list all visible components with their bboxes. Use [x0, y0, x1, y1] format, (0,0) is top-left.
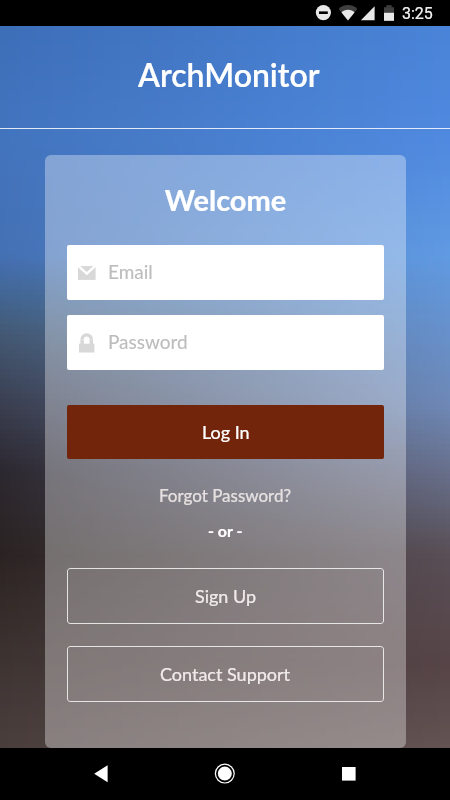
button[interactable]: Contact Support	[67, 646, 384, 702]
button[interactable]: Email	[67, 245, 384, 300]
button[interactable]: Recent apps	[323, 748, 375, 800]
button[interactable]: Home	[199, 748, 251, 800]
staticText: ArchMonitor	[138, 55, 320, 93]
staticText: Welcome	[67, 182, 384, 217]
staticText: Contact Support	[160, 663, 291, 685]
button[interactable]: Sign Up	[67, 568, 384, 624]
button[interactable]: Forgot Password?	[67, 481, 384, 509]
button[interactable]: Password	[67, 315, 384, 370]
button[interactable]: Log In	[67, 405, 384, 459]
staticText: Log In	[202, 421, 250, 443]
button[interactable]: Back	[75, 748, 127, 800]
staticText: Password	[108, 330, 188, 353]
staticText: 3:25	[402, 4, 433, 23]
staticText: - or -	[208, 521, 243, 540]
staticText: Email	[108, 260, 153, 283]
staticText: Sign Up	[195, 585, 257, 607]
staticText: Forgot Password?	[159, 485, 292, 505]
